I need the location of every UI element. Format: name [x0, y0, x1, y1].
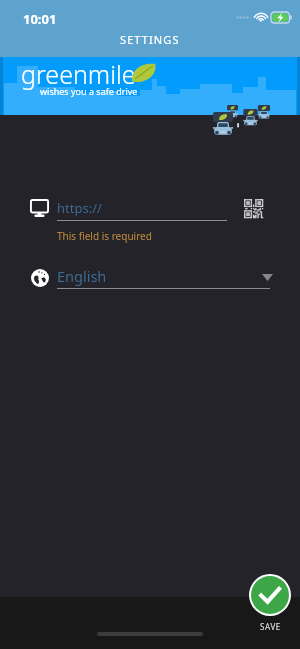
staticText: English — [57, 266, 107, 286]
staticText: SETTINGS — [120, 32, 180, 47]
button[interactable] — [30, 262, 270, 294]
staticText: 10:01 — [23, 10, 57, 28]
button[interactable]: Scan QR code — [238, 193, 269, 224]
staticText: greenmile — [21, 57, 136, 91]
staticText: This field is required — [57, 229, 152, 243]
staticText: wishes you a safe drive — [40, 85, 138, 97]
staticText: https:// — [57, 199, 102, 217]
staticText: SAVE — [260, 621, 281, 632]
button[interactable]: Save — [251, 576, 289, 614]
